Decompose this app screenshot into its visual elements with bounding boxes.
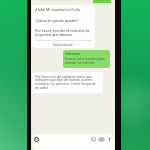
button[interactable]: Emoji	[32, 134, 114, 150]
staticText: ¿Cómo te puedo ayudar?	[35, 18, 79, 23]
button[interactable]: Por favor escribe palabras clave que ind…	[32, 72, 103, 93]
staticText: Quiero información para realizar un trám…	[65, 56, 108, 65]
other: Camera	[99, 137, 104, 142]
button[interactable]: Trámites	[63, 50, 110, 68]
staticText: Por favor escribe palabras clave que ind…	[35, 74, 100, 90]
staticText: Por favor, escribe el número de la opció…	[35, 28, 92, 37]
staticText: Seleccionar	[53, 42, 74, 47]
staticText: ¡Hola! Mi nombre es Celia	[35, 7, 80, 12]
button[interactable]: ¡Hola! Mi nombre es Celia	[32, 5, 95, 48]
other: Attach	[91, 137, 96, 142]
other: Emoji	[34, 137, 39, 142]
other: Voice message	[107, 137, 112, 142]
staticText: Trámites	[65, 51, 81, 56]
button[interactable]: Seleccionar	[35, 41, 92, 48]
